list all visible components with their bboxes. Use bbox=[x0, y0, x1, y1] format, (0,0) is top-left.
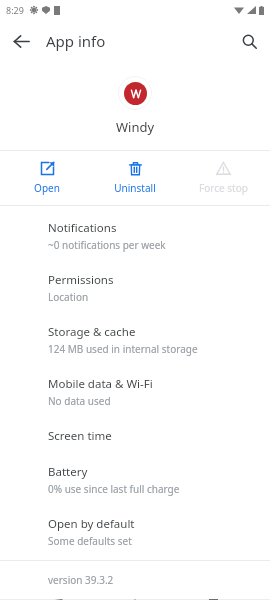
staticText: Location bbox=[48, 290, 89, 304]
staticText: 8:29 bbox=[6, 4, 24, 16]
button[interactable]: Force stop bbox=[182, 161, 264, 195]
staticText: ~0 notifications per week bbox=[48, 238, 166, 252]
button[interactable]: Back bbox=[38, 599, 78, 600]
staticText: No data used bbox=[48, 394, 111, 408]
staticText: Uninstall bbox=[114, 181, 156, 195]
staticText: Open bbox=[34, 181, 60, 195]
staticText: 0% use since last full charge bbox=[48, 482, 180, 496]
staticText: Force stop bbox=[199, 181, 248, 195]
button[interactable]: Uninstall bbox=[94, 161, 176, 195]
button[interactable]: Recent apps bbox=[193, 599, 233, 600]
staticText: Open by default bbox=[48, 516, 135, 532]
staticText: Storage & cache bbox=[48, 324, 136, 340]
button[interactable]: Open by default bbox=[0, 506, 270, 558]
staticText: Windy bbox=[116, 118, 155, 136]
button[interactable]: Open bbox=[6, 161, 88, 195]
button[interactable]: Mobile data & Wi-Fi bbox=[0, 366, 270, 418]
button[interactable]: Battery bbox=[0, 454, 270, 506]
button[interactable]: Home bbox=[115, 599, 155, 600]
staticText: Battery bbox=[48, 464, 88, 480]
staticText: Notifications bbox=[48, 220, 117, 236]
staticText: Some defaults set bbox=[48, 534, 132, 548]
staticText: Mobile data & Wi-Fi bbox=[48, 376, 153, 392]
staticText: version 39.3.2 bbox=[48, 573, 114, 587]
button[interactable]: Search bbox=[228, 20, 270, 62]
button[interactable]: Screen time bbox=[0, 418, 270, 454]
staticText: Screen time bbox=[48, 428, 112, 444]
button[interactable]: Back bbox=[0, 20, 42, 62]
staticText: 124 MB used in internal storage bbox=[48, 342, 198, 356]
button[interactable]: Notifications bbox=[0, 210, 270, 262]
button[interactable]: Permissions bbox=[0, 262, 270, 314]
staticText: App info bbox=[46, 31, 106, 51]
button[interactable]: Storage & cache bbox=[0, 314, 270, 366]
staticText: Permissions bbox=[48, 272, 114, 288]
